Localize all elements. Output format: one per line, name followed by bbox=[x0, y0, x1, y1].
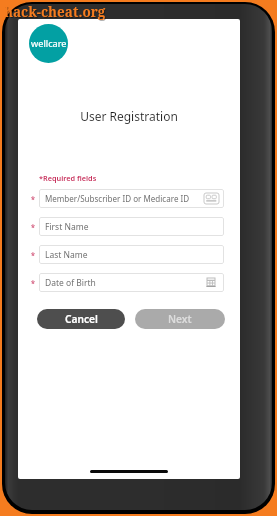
other: Scan ID card bbox=[204, 193, 219, 204]
staticText: Last Name bbox=[45, 249, 88, 261]
button[interactable]: Cancel bbox=[37, 309, 125, 329]
staticText: User Registration bbox=[18, 108, 240, 124]
staticText: * bbox=[29, 250, 37, 261]
staticText: *Required fields bbox=[39, 173, 97, 183]
button[interactable]: Member/Subscriber ID or Medicare ID bbox=[39, 189, 224, 208]
staticText: Date of Birth bbox=[45, 277, 96, 289]
staticText: wellcare bbox=[31, 37, 67, 50]
button[interactable]: Date of Birth bbox=[39, 273, 224, 292]
staticText: hack-cheat.org bbox=[4, 3, 106, 21]
staticText: hack-cheat.org bbox=[5, 4, 107, 22]
other: Pick date bbox=[207, 278, 215, 287]
button[interactable]: First Name bbox=[39, 217, 224, 236]
staticText: * bbox=[29, 278, 37, 289]
staticText: Cancel bbox=[65, 312, 98, 326]
staticText: * bbox=[29, 194, 37, 205]
button[interactable]: Next bbox=[135, 309, 225, 329]
staticText: * bbox=[29, 222, 37, 233]
staticText: Member/Subscriber ID or Medicare ID bbox=[45, 193, 190, 204]
button[interactable]: Last Name bbox=[39, 245, 224, 264]
staticText: Next bbox=[168, 312, 192, 326]
staticText: First Name bbox=[45, 221, 89, 233]
